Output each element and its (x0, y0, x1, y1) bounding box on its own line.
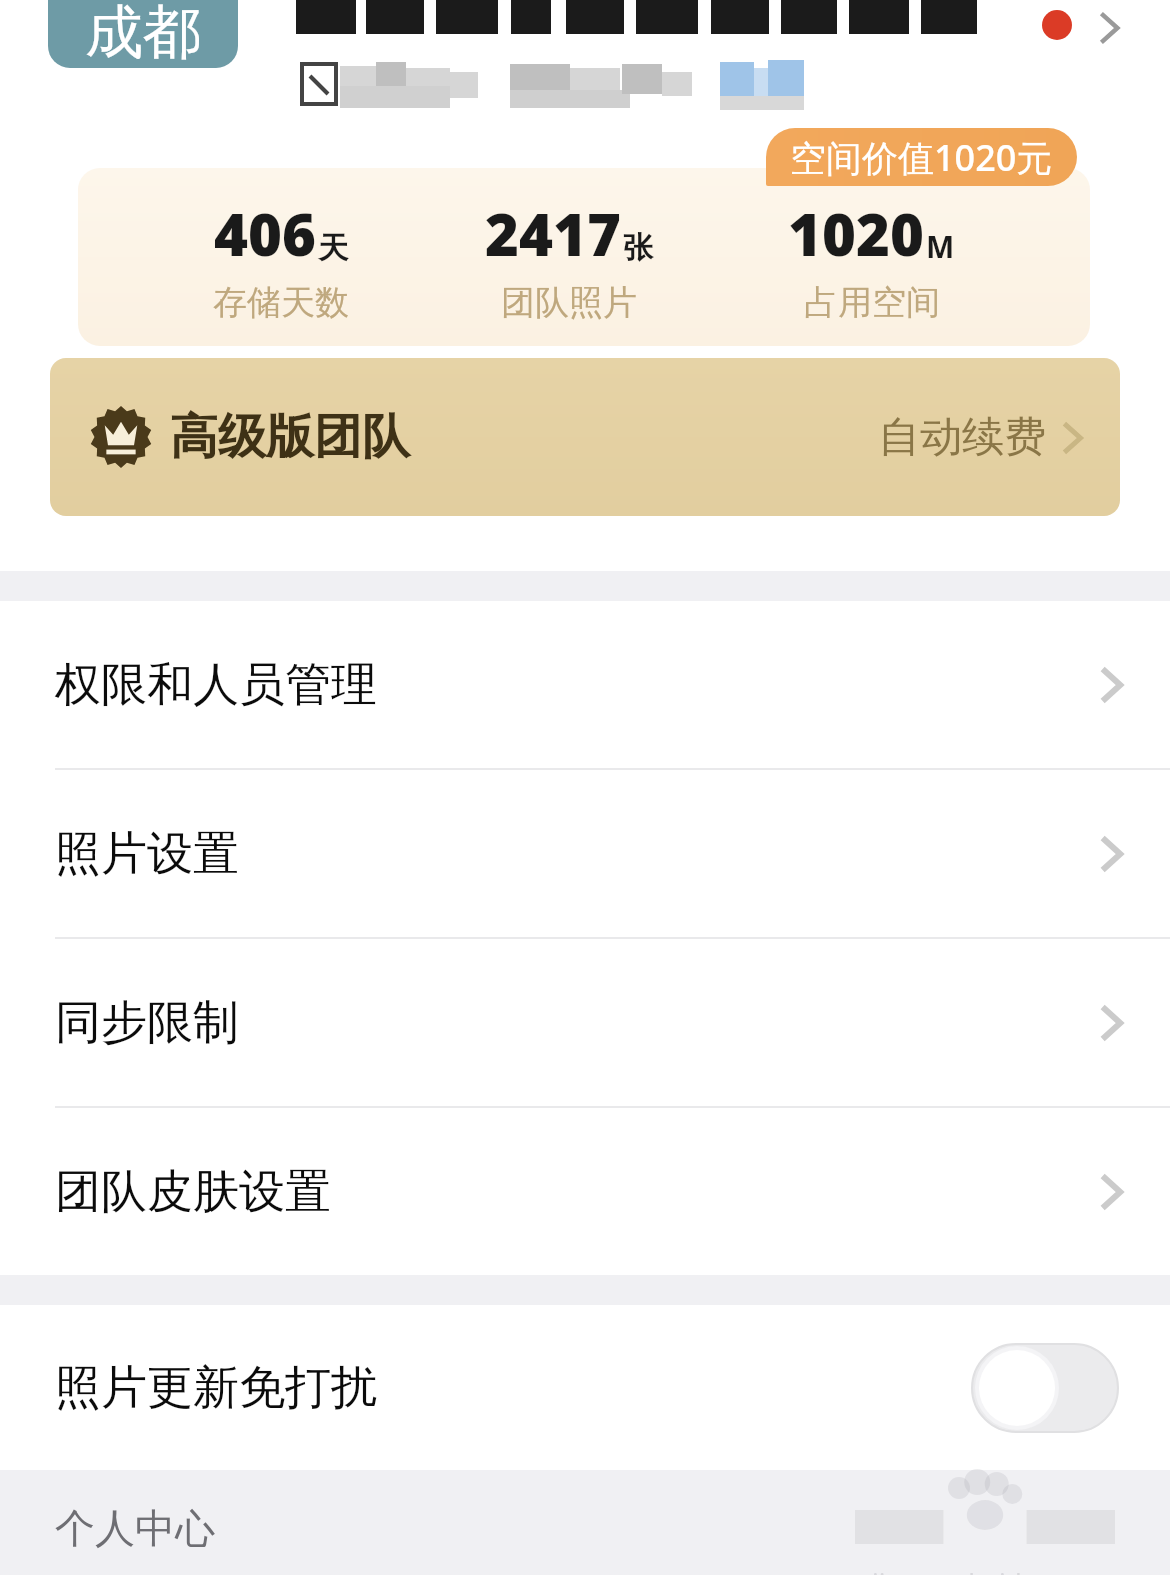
staticText: 406 (214, 194, 316, 273)
staticText: 存储天数 (213, 281, 349, 324)
staticText: 个人中心 (55, 1503, 215, 1553)
button[interactable]: 406 (78, 168, 1090, 346)
staticText: 照片更新免打扰 (55, 1359, 377, 1417)
staticText: 照片设置 (55, 825, 239, 883)
staticText: 占用空间 (804, 281, 940, 324)
staticText: 2417 (485, 194, 621, 273)
button[interactable]: 团队皮肤设置 (0, 1108, 1170, 1275)
staticText: 成都 (85, 0, 201, 68)
staticText: M (926, 226, 955, 267)
staticText: 张 (623, 229, 653, 267)
staticText: 团队照片 (501, 281, 637, 324)
staticText: 高级版团队 (170, 407, 410, 467)
button[interactable]: 查看团队详情 (1086, 0, 1132, 56)
button[interactable]: 照片更新免打扰开关 (972, 1344, 1118, 1432)
staticText: 自动续费 (878, 411, 1046, 464)
staticText: 团队皮肤设置 (55, 1163, 331, 1221)
button[interactable]: 高级版团队 (50, 358, 1120, 516)
button[interactable]: 权限和人员管理 (0, 601, 1170, 768)
staticText: 天 (318, 229, 348, 267)
staticText: 权限和人员管理 (55, 656, 377, 714)
staticText: 空间价值1020元 (790, 133, 1053, 182)
button[interactable]: 成都 (0, 0, 1170, 128)
staticText: 同步限制 (55, 994, 239, 1052)
button[interactable]: 照片更新免打扰 (0, 1305, 1170, 1470)
button[interactable]: 照片设置 (0, 770, 1170, 937)
staticText: 1020 (788, 194, 924, 273)
button[interactable]: 同步限制 (0, 939, 1170, 1106)
